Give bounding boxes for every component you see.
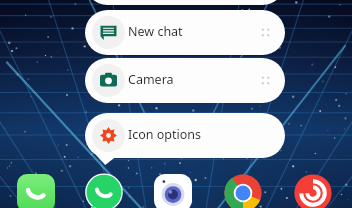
button[interactable]: Phone	[15, 172, 57, 208]
button[interactable]: New chat	[85, 10, 285, 55]
button[interactable]: Camera	[85, 58, 285, 103]
staticText: Icon options	[128, 126, 202, 143]
button[interactable]: Camera app	[152, 172, 194, 208]
button[interactable]: WhatsApp	[83, 172, 125, 208]
button[interactable]: Chrome	[222, 172, 264, 208]
staticText: Camera	[128, 71, 174, 88]
button[interactable]: Icon options	[85, 113, 285, 158]
button[interactable]	[85, 0, 285, 5]
staticText: New chat	[128, 23, 183, 40]
button[interactable]: Pocket Casts	[292, 172, 334, 208]
